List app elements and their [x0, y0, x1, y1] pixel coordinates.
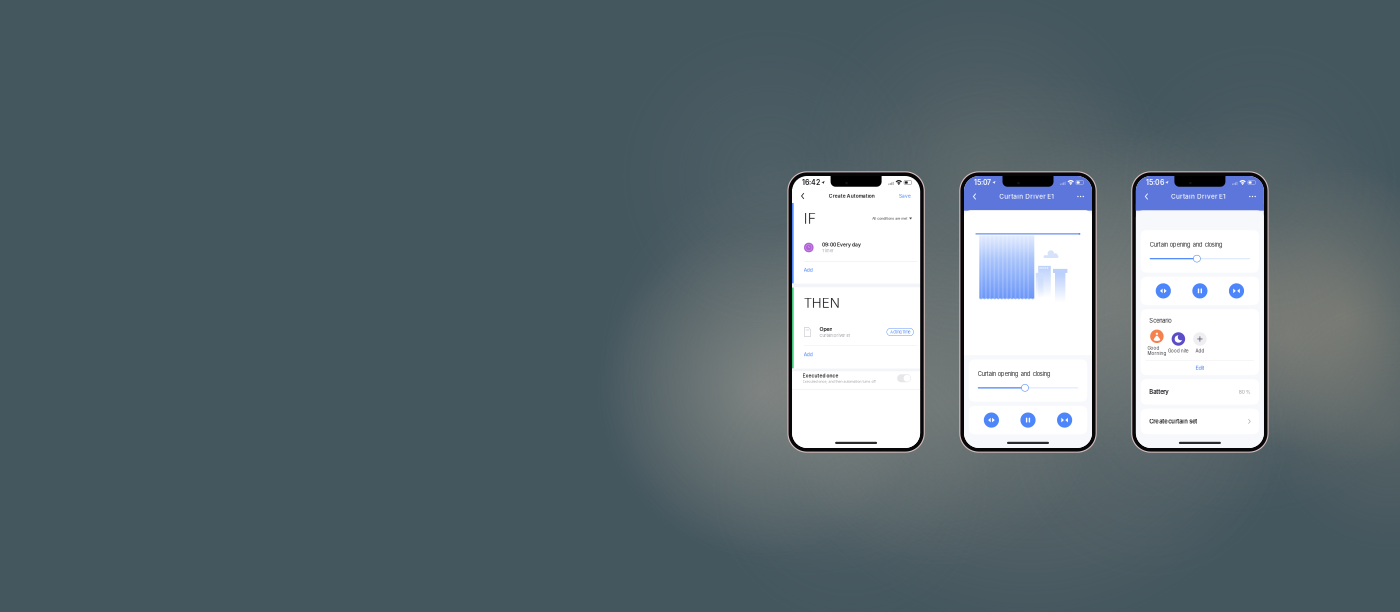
- button[interactable]: Add: [792, 346, 819, 363]
- button[interactable]: Close curtain: [1229, 283, 1244, 298]
- button[interactable]: Add: [792, 261, 819, 278]
- button[interactable]: Executed once: [897, 374, 911, 382]
- staticText: Curtain Driver E1: [1171, 193, 1226, 200]
- staticText: Curtain Driver E1: [819, 333, 850, 338]
- button[interactable]: Back: [964, 189, 984, 204]
- staticText: 16:42: [802, 178, 820, 187]
- staticText: IF: [804, 210, 816, 227]
- staticText: Curtain opening and closing: [978, 370, 1051, 377]
- staticText: Add: [804, 267, 813, 273]
- button[interactable]: Acting Time: [887, 328, 914, 336]
- staticText: Scenario: [1149, 317, 1171, 324]
- staticText: Acting Time: [890, 330, 910, 334]
- button[interactable]: Save: [891, 189, 920, 203]
- staticText: Edit: [1195, 365, 1204, 371]
- staticText: THEN: [804, 295, 840, 311]
- staticText: Executed once, and then automation turns…: [803, 379, 876, 384]
- button[interactable]: More options: [1069, 189, 1092, 204]
- button[interactable]: Pause: [1192, 283, 1207, 298]
- staticText: Battery: [1149, 388, 1168, 395]
- staticText: 15:06: [1146, 178, 1164, 187]
- button[interactable]: Pause: [1020, 412, 1036, 428]
- button[interactable]: Open curtain: [1156, 283, 1171, 298]
- staticText: Executed once: [803, 373, 839, 379]
- staticText: Add: [1195, 348, 1204, 353]
- staticText: Curtain Driver E1: [999, 193, 1054, 200]
- staticText: 15:07: [974, 178, 991, 187]
- staticText: Good nite: [1168, 348, 1189, 353]
- button[interactable]: Add: [1189, 332, 1211, 353]
- staticText: Curtain opening and closing: [1150, 241, 1223, 248]
- button[interactable]: Close curtain: [1057, 412, 1072, 428]
- button[interactable]: Create curtain set: [1141, 409, 1259, 434]
- staticText: 80 %: [1239, 389, 1251, 395]
- button[interactable]: Good nite: [1168, 332, 1189, 353]
- button[interactable]: Back: [1136, 189, 1156, 204]
- staticText: Save: [899, 193, 911, 199]
- staticText: Create curtain set: [1149, 418, 1197, 425]
- staticText: Timer: [822, 248, 834, 253]
- staticText: 09:00 Every day: [822, 242, 861, 248]
- staticText: Add: [804, 351, 813, 357]
- staticText: All conditions are met: [872, 216, 907, 221]
- button[interactable]: Open curtain: [984, 412, 999, 428]
- button[interactable]: Good Morning: [1146, 330, 1168, 356]
- staticText: Open: [819, 326, 832, 332]
- button[interactable]: Edit: [1141, 361, 1259, 375]
- staticText: Good Morning: [1147, 345, 1166, 356]
- staticText: Create Automation: [829, 193, 875, 199]
- button[interactable]: More options: [1241, 189, 1264, 204]
- button[interactable]: Back: [792, 189, 812, 203]
